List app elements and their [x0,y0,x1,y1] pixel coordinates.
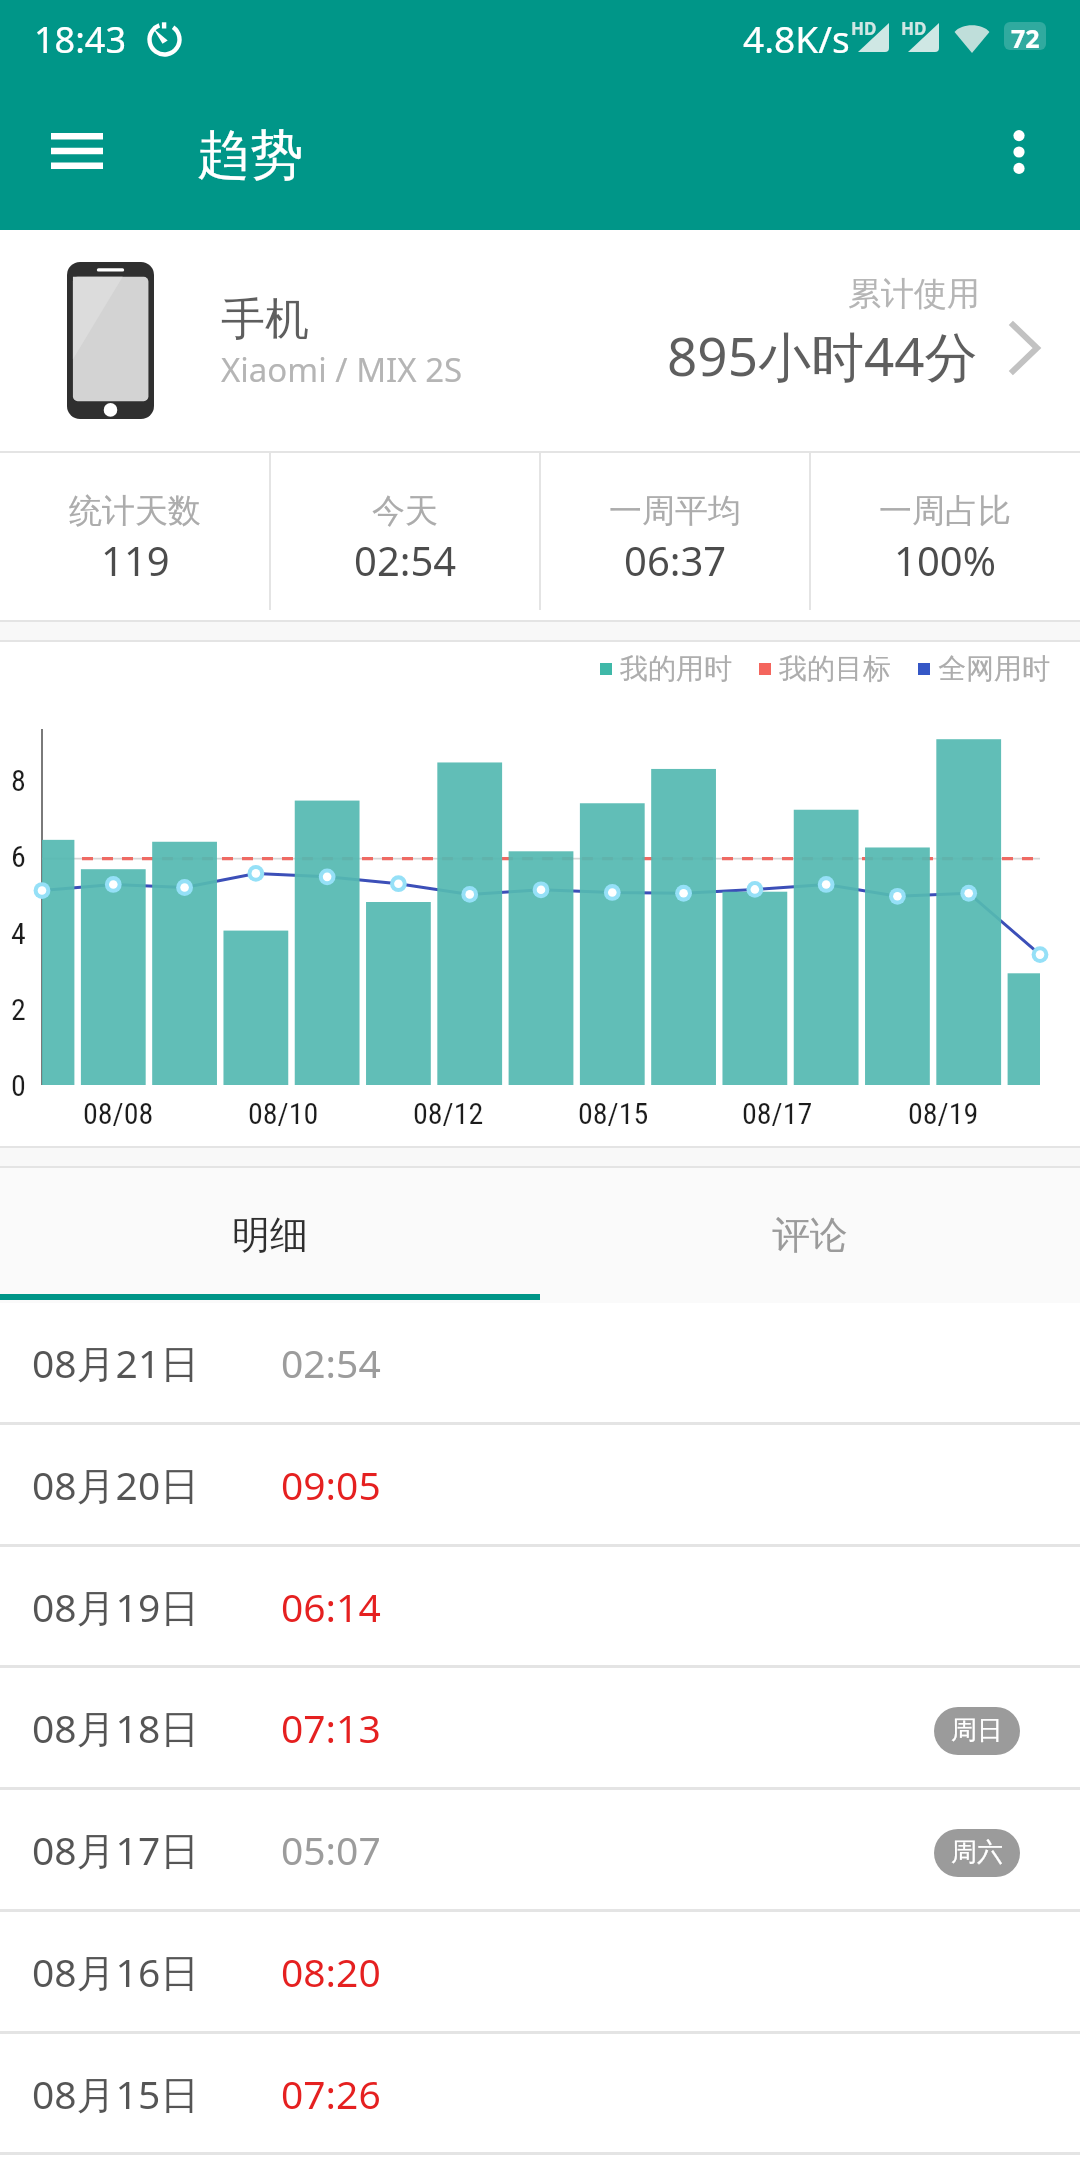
staticText: 周六 [951,1836,1003,1869]
staticText: 08/19 [908,1096,979,1131]
staticText: 02:54 [281,1336,381,1389]
staticText: 08月15日 [32,2067,200,2120]
staticText: 08/10 [248,1096,319,1131]
staticText: 06:14 [281,1580,381,1633]
staticText: 今天 [372,490,438,532]
staticText: 统计天数 [69,490,201,532]
staticText: 我的目标 [779,651,891,686]
staticText: 08/15 [578,1096,649,1131]
staticText: 趋势 [197,122,303,189]
button[interactable]: 08月19日 [0,1547,1080,1669]
staticText: 8 [11,763,26,798]
staticText: 08/17 [742,1096,813,1131]
button[interactable]: 08月17日 [0,1790,1080,1912]
staticText: 08:20 [281,1945,381,1998]
button[interactable]: More options [959,92,1079,212]
button[interactable]: 08月18日 [0,1668,1080,1790]
staticText: Xiaomi / MIX 2S [221,347,463,392]
button[interactable]: 评论 [540,1168,1080,1303]
staticText: 08月16日 [32,1945,200,1998]
staticText: 07:13 [281,1701,381,1754]
staticText: 全网用时 [938,651,1050,686]
staticText: 周日 [951,1714,1003,1747]
staticText: 08月19日 [32,1580,200,1633]
button[interactable]: 统计天数 [0,453,270,620]
button[interactable]: 一周占比 [810,453,1080,620]
staticText: 07:26 [281,2067,381,2120]
staticText: 06:37 [624,533,727,587]
staticText: 08月17日 [32,1823,200,1876]
staticText: 72 [1011,22,1040,49]
staticText: 18:43 [34,15,127,64]
staticText: 4 [11,916,26,951]
button[interactable]: 08月16日 [0,1912,1080,2034]
button[interactable]: 08月15日 [0,2034,1080,2156]
button[interactable]: 08月21日 [0,1303,1080,1425]
staticText: 一周占比 [879,490,1011,532]
staticText: HD [901,17,927,40]
staticText: 4.8K/s [743,13,850,63]
staticText: 累计使用 [848,273,980,315]
staticText: 119 [101,533,170,587]
staticText: 08/12 [413,1096,484,1131]
staticText: 08月21日 [32,1336,200,1389]
staticText: 08/08 [83,1096,154,1131]
button[interactable]: 08月20日 [0,1425,1080,1547]
staticText: 0 [11,1068,26,1103]
staticText: 一周平均 [609,490,741,532]
staticText: 2 [11,992,26,1027]
button[interactable]: 今天 [270,453,540,620]
staticText: 评论 [772,1211,848,1259]
staticText: 手机 [221,292,309,347]
button[interactable]: Open navigation menu [11,90,142,212]
staticText: 05:07 [281,1823,381,1876]
staticText: HD [851,17,877,40]
staticText: 我的用时 [620,651,732,686]
button[interactable]: 手机 [0,230,1080,451]
staticText: 09:05 [281,1458,381,1511]
staticText: 100% [894,533,996,587]
staticText: 02:54 [354,533,457,587]
staticText: 895小时44分 [667,319,978,391]
staticText: 明细 [232,1211,308,1259]
staticText: 08月20日 [32,1458,200,1511]
staticText: 6 [11,839,26,874]
button[interactable]: 一周平均 [540,453,810,620]
button[interactable]: 明细 [0,1168,540,1303]
staticText: 08月18日 [32,1701,200,1754]
